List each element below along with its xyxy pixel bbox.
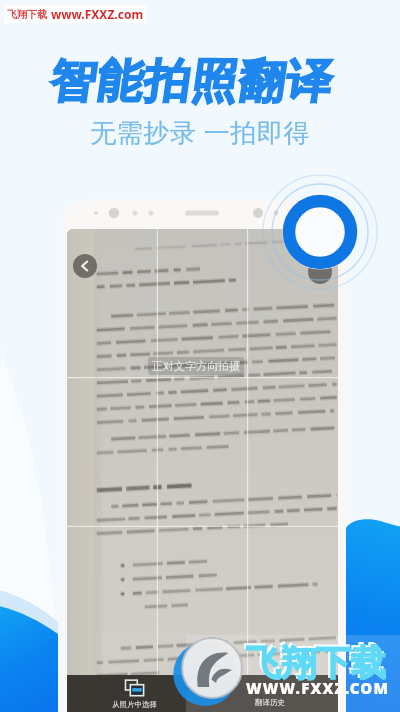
staticText: 无需抄录 一拍即得: [0, 114, 400, 150]
staticText: 飞翔下载: [244, 639, 384, 683]
button[interactable]: 从照片中选择: [67, 675, 202, 712]
staticText: 飞翔下载: [7, 8, 47, 21]
button[interactable]: 翻译历史: [202, 675, 338, 712]
staticText: www.FXXZ.com: [51, 6, 144, 22]
staticText: 智能拍照翻译: [0, 53, 400, 111]
staticText: 飞翔下载: [246, 641, 386, 685]
staticText: 翻译历史: [255, 698, 285, 707]
staticText: WWW.FXXZ.COM: [246, 678, 390, 698]
staticText: 从照片中选择: [112, 700, 157, 709]
button[interactable]: Flash: [308, 260, 332, 284]
button[interactable]: Back: [73, 254, 97, 278]
staticText: 正对文字方向拍摄: [152, 359, 240, 373]
